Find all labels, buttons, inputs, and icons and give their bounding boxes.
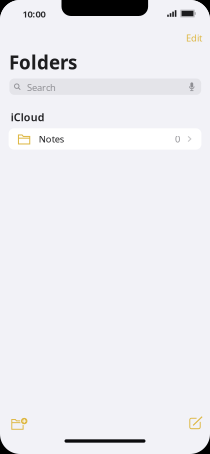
staticText: Search bbox=[27, 81, 56, 94]
staticText: Notes bbox=[39, 133, 64, 145]
staticText: 10:00 bbox=[23, 8, 46, 20]
button[interactable]: New Folder bbox=[6, 412, 32, 435]
staticText: Folders bbox=[9, 50, 77, 75]
button[interactable]: New Note bbox=[184, 413, 208, 434]
button[interactable]: Search bbox=[9, 78, 201, 95]
staticText: 0 bbox=[175, 133, 180, 145]
button[interactable]: Notes bbox=[9, 128, 201, 150]
button[interactable]: Edit bbox=[181, 29, 207, 47]
staticText: Edit bbox=[186, 32, 202, 44]
staticText: iCloud bbox=[11, 110, 45, 124]
